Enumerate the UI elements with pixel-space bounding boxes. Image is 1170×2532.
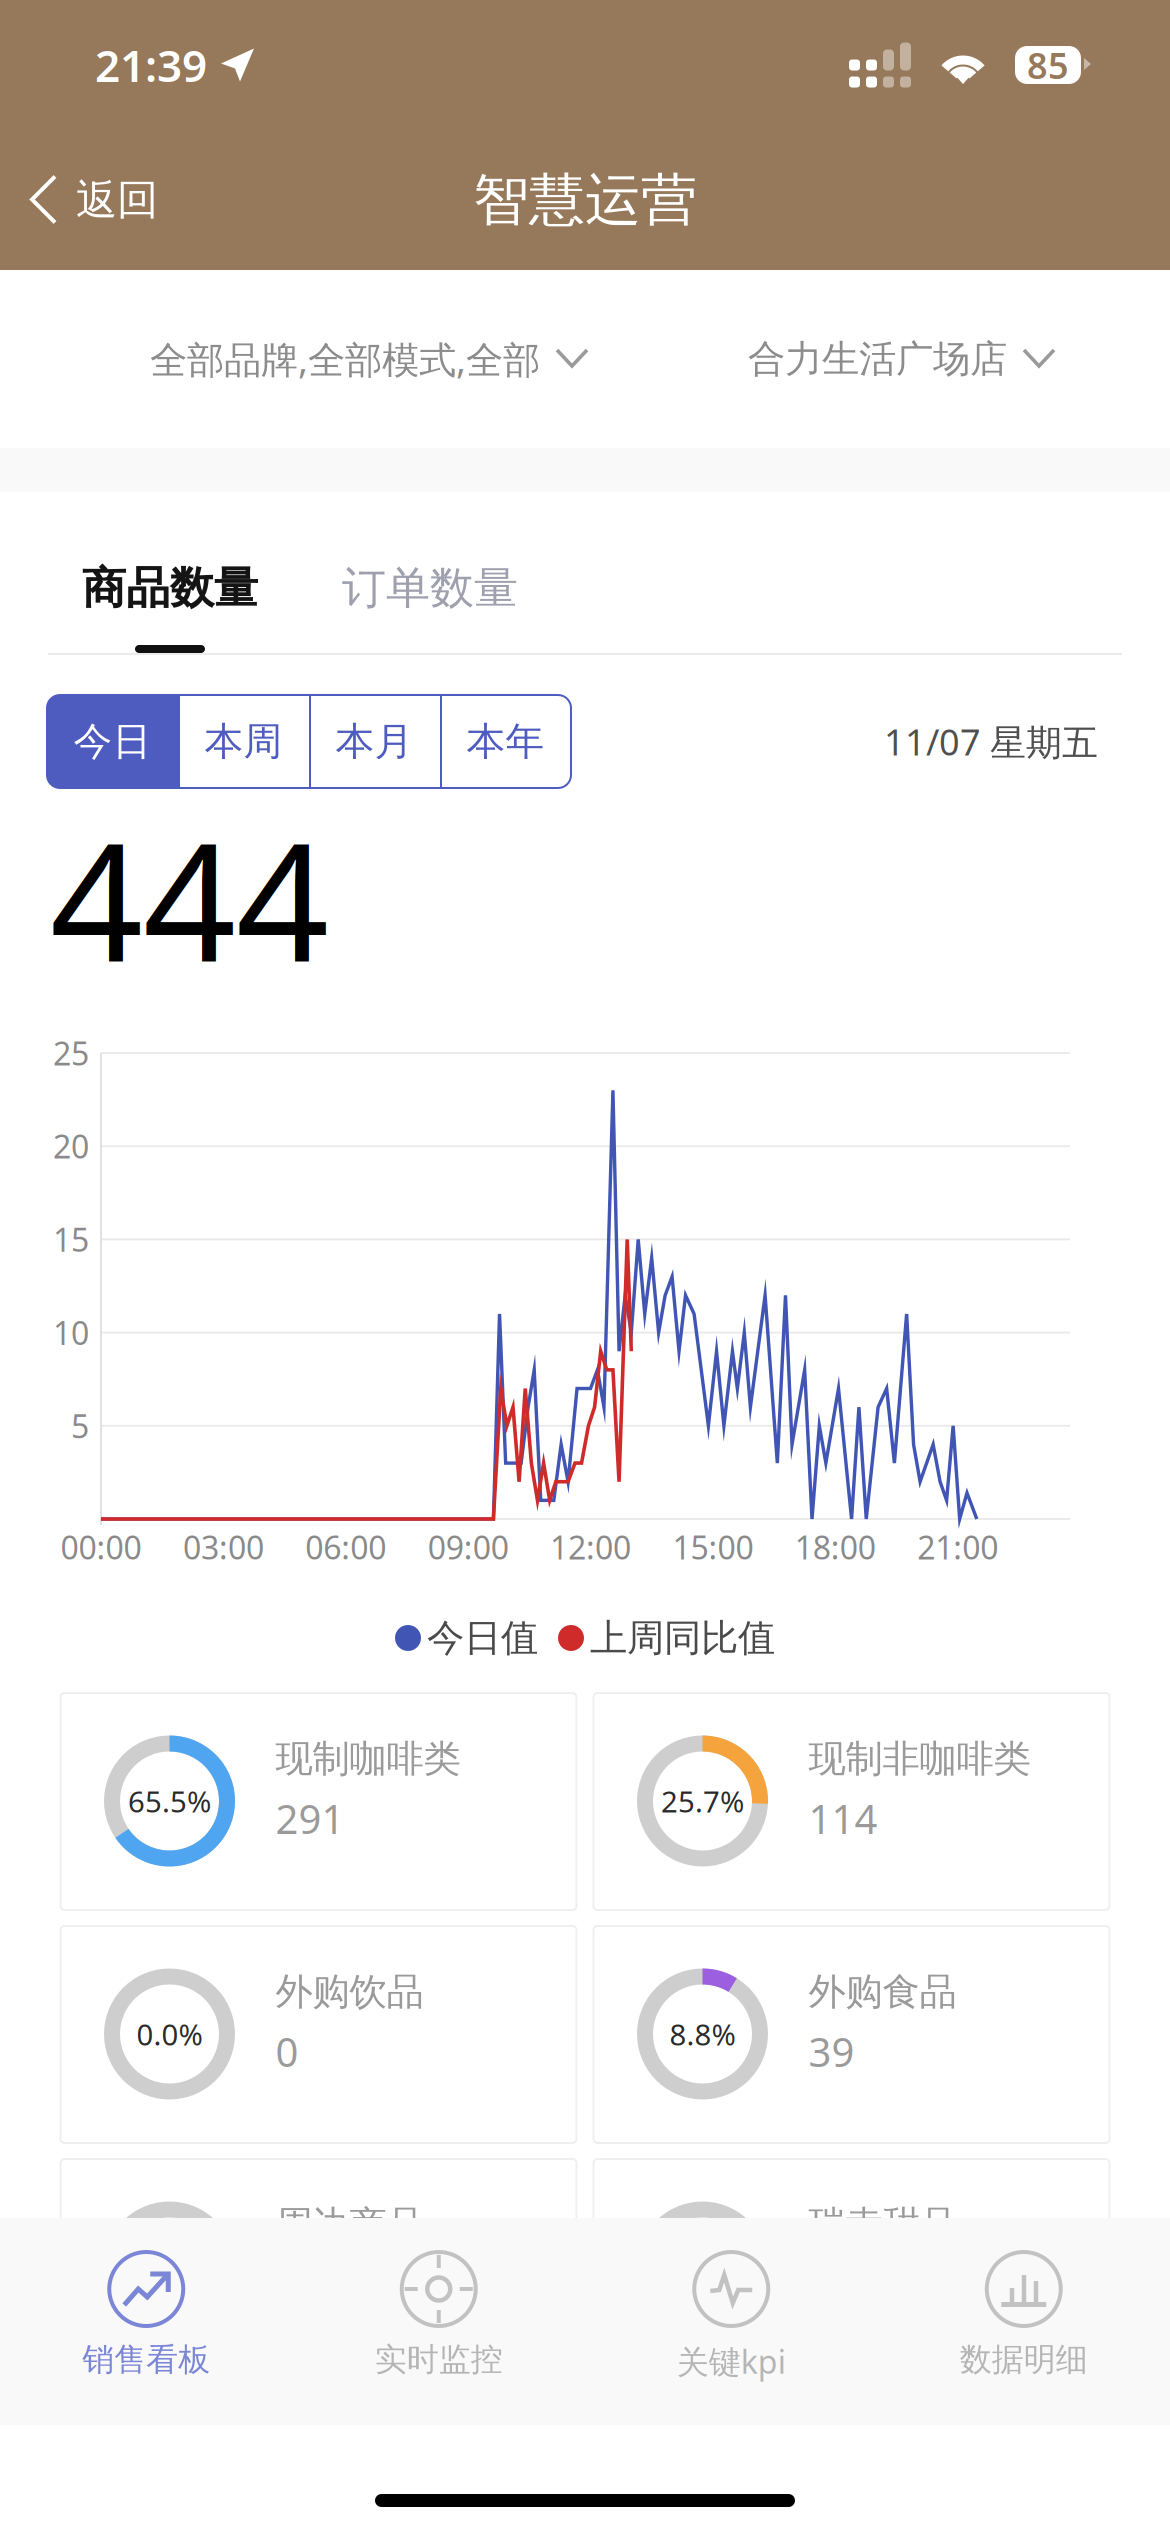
button[interactable]: 今日 <box>47 695 178 788</box>
staticText: 外购食品 <box>808 1969 956 2015</box>
staticText: 25.7% <box>661 1781 744 1820</box>
staticText: 15 <box>53 1218 89 1261</box>
staticText: 85 <box>1027 41 1069 89</box>
staticText: 00:00 <box>60 1526 141 1568</box>
button[interactable]: 实时监控 <box>292 2218 585 2425</box>
staticText: 本年 <box>466 718 544 765</box>
staticText: 0 <box>275 2025 298 2078</box>
staticText: 外购饮品 <box>275 1969 423 2015</box>
staticText: 今日 <box>73 718 151 765</box>
staticText: 21:39 <box>95 36 207 94</box>
staticText: 444 <box>50 790 329 1006</box>
staticText: 销售看板 <box>82 2340 210 2379</box>
staticText: 瑞幸甜品 <box>808 2202 956 2248</box>
staticText: 现制咖啡类 <box>275 1736 460 1782</box>
staticText: 39 <box>808 2025 854 2078</box>
button[interactable]: 关键kpi <box>585 2218 877 2425</box>
staticText: 0.0% <box>669 2247 735 2286</box>
staticText: 21:00 <box>917 1526 998 1568</box>
button[interactable]: 本周 <box>178 695 309 788</box>
staticText: 12:00 <box>550 1526 631 1568</box>
staticText: 合力生活广场店 <box>748 336 1007 382</box>
staticText: 09:00 <box>428 1526 509 1568</box>
staticText: 114 <box>808 1792 877 1845</box>
button[interactable]: 本月 <box>309 695 440 788</box>
staticText: 今日值 <box>427 1615 538 1661</box>
staticText: 本周 <box>204 718 282 765</box>
staticText: 11/07 星期五 <box>884 718 1098 765</box>
staticText: 全部品牌,全部模式,全部 <box>150 334 540 384</box>
staticText: 20 <box>53 1125 89 1167</box>
button[interactable]: 全部品牌,全部模式,全部 <box>136 304 602 414</box>
staticText: 06:00 <box>305 1526 386 1568</box>
staticText: 8.8% <box>669 2014 735 2053</box>
staticText: 0.0% <box>136 2014 202 2053</box>
button[interactable]: 65.5% <box>60 1693 576 1910</box>
staticText: 5 <box>71 1405 89 1447</box>
button[interactable]: 合力生活广场店 <box>734 304 1069 414</box>
staticText: 10 <box>53 1311 89 1354</box>
button[interactable]: 销售看板 <box>0 2218 292 2425</box>
staticText: 65.5% <box>128 1781 211 1820</box>
button[interactable]: 0.0% <box>60 2159 576 2376</box>
staticText: 0.0% <box>136 2247 202 2286</box>
button[interactable]: 25.7% <box>593 1693 1109 1910</box>
staticText: 本月 <box>335 718 413 765</box>
staticText: 返回 <box>76 175 158 225</box>
button[interactable]: 订单数量 <box>326 561 534 653</box>
staticText: 15:00 <box>672 1526 753 1568</box>
button[interactable]: 本年 <box>440 695 571 788</box>
button[interactable]: 商品数量 <box>66 561 274 653</box>
staticText: 实时监控 <box>375 2340 503 2379</box>
staticText: 18:00 <box>795 1526 876 1568</box>
button[interactable]: 8.8% <box>593 1926 1109 2143</box>
button[interactable]: 数据明细 <box>877 2218 1170 2425</box>
staticText: 数据明细 <box>960 2340 1088 2379</box>
staticText: 订单数量 <box>342 561 518 615</box>
staticText: 25 <box>53 1032 89 1074</box>
button[interactable]: 0.0% <box>60 1926 576 2143</box>
staticText: 智慧运营 <box>473 166 697 234</box>
staticText: 上周同比值 <box>590 1615 775 1661</box>
staticText: 关键kpi <box>677 2340 786 2382</box>
button[interactable]: 返回 <box>0 145 182 255</box>
staticText: 商品数量 <box>82 561 258 615</box>
button[interactable]: 0.0% <box>593 2159 1109 2376</box>
staticText: 03:00 <box>183 1526 264 1568</box>
staticText: 现制非咖啡类 <box>808 1736 1030 1782</box>
staticText: 周边商品 <box>275 2202 423 2248</box>
staticText: 291 <box>275 1792 344 1845</box>
